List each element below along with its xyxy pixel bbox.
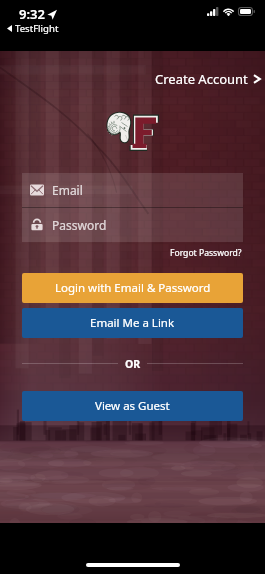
staticText: Login with Email & Password — [55, 280, 211, 296]
button[interactable]: Forgot Password? — [169, 245, 243, 261]
staticText: 9:32 — [19, 5, 45, 23]
staticText: Email — [52, 182, 83, 198]
staticText: Forgot Password? — [170, 247, 242, 259]
staticText: Email Me a Link — [90, 315, 175, 331]
button[interactable]: Create Account — [149, 66, 265, 92]
button[interactable]: Password — [22, 208, 243, 242]
staticText: TestFlight — [15, 22, 59, 35]
button[interactable]: Email Me a Link — [22, 308, 243, 338]
button[interactable]: Email — [22, 173, 243, 207]
staticText: OR — [125, 357, 141, 371]
staticText: Create Account — [155, 70, 248, 88]
staticText: View as Guest — [95, 398, 170, 414]
staticText: Password — [52, 217, 107, 233]
button[interactable]: Login with Email & Password — [22, 273, 243, 303]
button[interactable]: View as Guest — [22, 391, 243, 421]
